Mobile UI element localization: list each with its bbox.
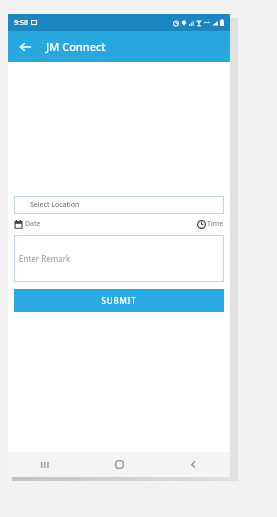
staticText: Date [25,219,41,229]
button[interactable]: Back [156,452,230,477]
staticText: JM Connect [46,39,106,54]
button[interactable]: Select Location [14,196,224,214]
button[interactable]: Time [197,219,224,229]
staticText: Enter Remark [19,253,71,264]
staticText: Time [207,219,224,229]
button[interactable]: SUBMIT [14,289,224,312]
staticText: SUBMIT [101,295,137,306]
button[interactable]: Enter Remark [14,235,224,282]
button[interactable]: Home [82,452,156,477]
staticText: Select Location [30,200,80,210]
button[interactable]: Recent apps [8,452,82,477]
staticText: 9:58 [14,18,28,28]
button[interactable]: Date [14,219,41,229]
button[interactable]: Back [14,36,36,58]
